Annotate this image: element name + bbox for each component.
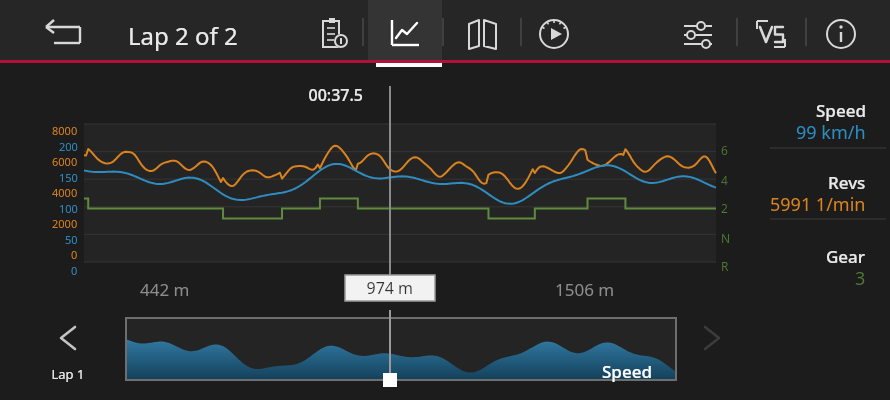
button[interactable]: Map <box>452 6 510 60</box>
button[interactable] <box>762 234 884 286</box>
button[interactable]: Settings <box>670 6 728 60</box>
button[interactable]: Information <box>815 6 869 60</box>
button[interactable]: Next lap <box>686 316 740 372</box>
button[interactable]: Previous lap <box>38 312 100 388</box>
button[interactable]: Compare <box>743 6 799 60</box>
button[interactable] <box>762 92 884 144</box>
button[interactable]: Chart <box>368 0 442 62</box>
button[interactable]: Summary <box>305 6 363 60</box>
button[interactable]: Back <box>30 6 100 60</box>
button[interactable] <box>126 318 676 380</box>
button[interactable] <box>100 6 300 60</box>
button[interactable] <box>762 162 884 214</box>
button[interactable]: Replay <box>528 6 586 60</box>
